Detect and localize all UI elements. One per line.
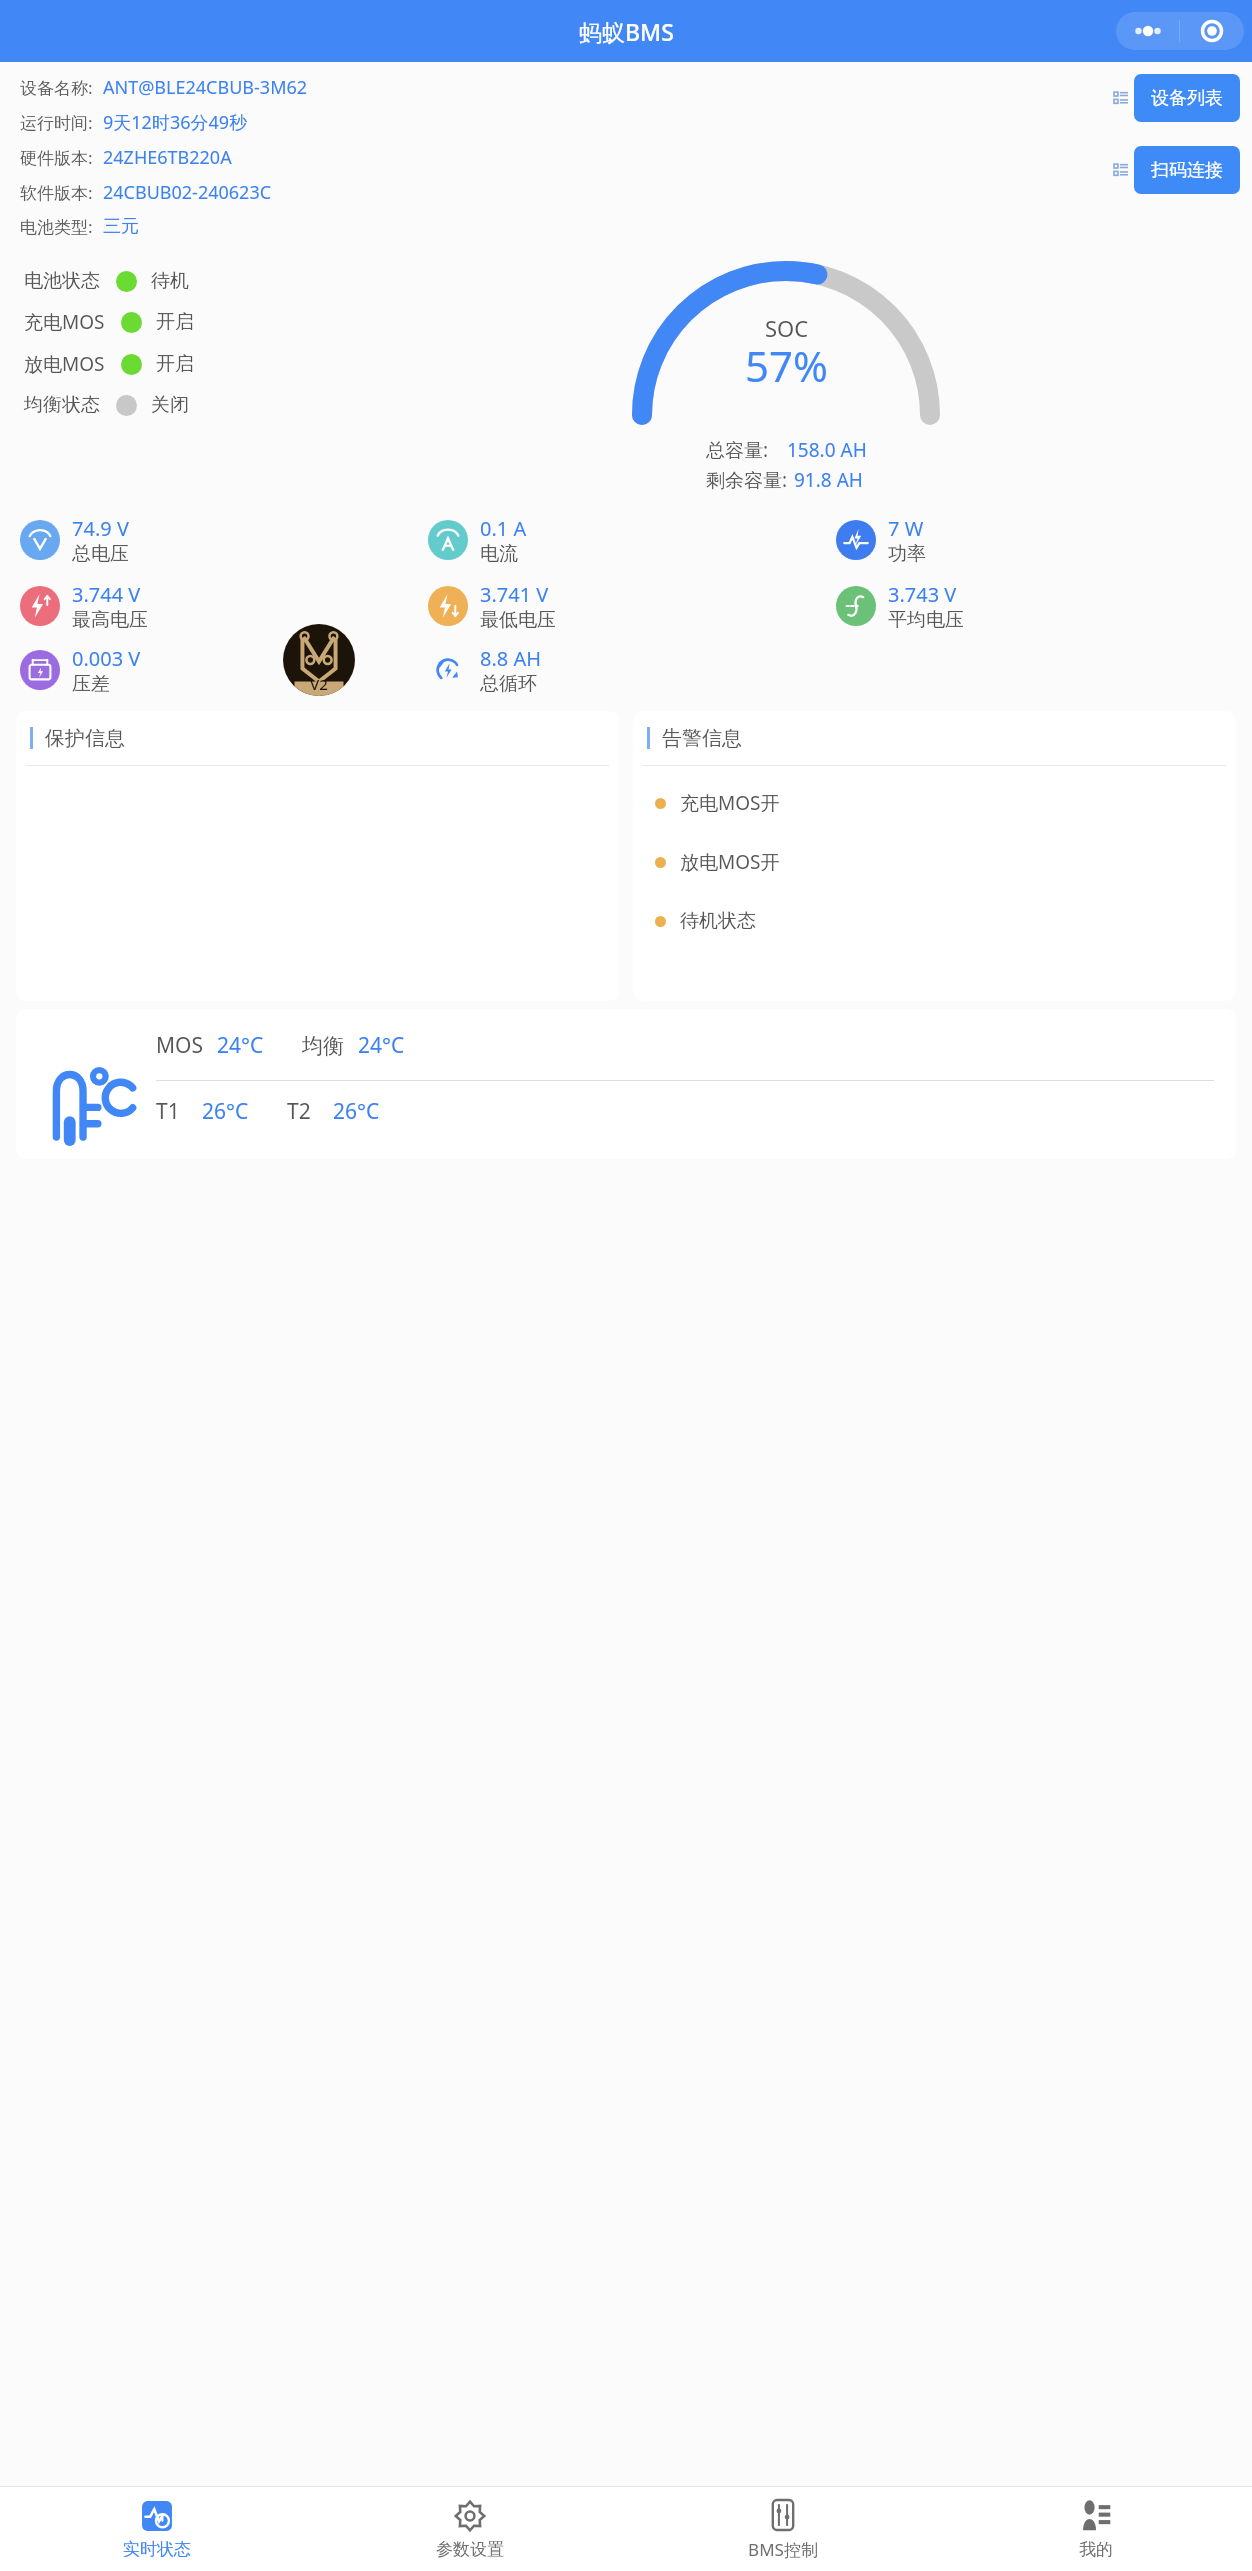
staticText: 3.741 V — [480, 581, 549, 608]
button[interactable]: 实时状态 — [0, 2487, 313, 2571]
staticText: 电池类型: — [20, 215, 93, 238]
staticText: 总容量: — [706, 437, 769, 463]
staticText: 0.1 A — [480, 515, 527, 542]
staticText: 7 W — [888, 515, 924, 542]
staticText: 26°C — [333, 1097, 380, 1126]
button[interactable]: App logo V2 — [283, 624, 355, 696]
staticText: 关闭 — [151, 393, 189, 417]
button[interactable]: 74.9 V — [14, 507, 422, 573]
staticText: 最高电压 — [72, 608, 148, 632]
staticText: 26°C — [202, 1097, 249, 1126]
staticText: 3.743 V — [888, 581, 957, 608]
button[interactable]: MOS — [16, 1009, 1236, 1159]
staticText: 24°C — [217, 1031, 264, 1060]
staticText: 158.0 AH — [787, 437, 867, 463]
staticText: MOS — [156, 1031, 203, 1060]
staticText: 硬件版本: — [20, 146, 93, 169]
staticText: 总电压 — [72, 542, 129, 566]
staticText: 功率 — [888, 542, 926, 566]
button[interactable]: BMS控制 — [626, 2487, 939, 2571]
button[interactable]: 扫码连接 — [1134, 146, 1240, 194]
staticText: BMS控制 — [748, 2538, 818, 2561]
staticText: 软件版本: — [20, 181, 93, 204]
staticText: 保护信息 — [45, 726, 125, 751]
staticText: 0.003 V — [72, 645, 141, 672]
staticText: 设备名称: — [20, 76, 93, 99]
button[interactable]: 3.741 V — [422, 573, 830, 639]
staticText: ANT@BLE24CBUB-3M62 — [103, 75, 308, 100]
staticText: 待机状态 — [680, 909, 756, 933]
staticText: 充电MOS开 — [680, 790, 780, 816]
staticText: 3.744 V — [72, 581, 141, 608]
button[interactable]: More — [1116, 12, 1179, 50]
staticText: 开启 — [156, 310, 194, 334]
staticText: 91.8 AH — [794, 467, 863, 493]
staticText: 告警信息 — [662, 726, 742, 751]
button[interactable]: 0.003 V — [14, 639, 422, 701]
button[interactable]: 7 W — [830, 507, 1238, 573]
staticText: 扫码连接 — [1151, 159, 1223, 182]
staticText: 放电MOS开 — [680, 849, 780, 875]
button[interactable]: 8.8 AH — [422, 639, 830, 701]
staticText: 参数设置 — [436, 2539, 504, 2560]
staticText: 平均电压 — [888, 608, 964, 632]
staticText: T2 — [287, 1097, 311, 1126]
button[interactable]: 告警信息 — [633, 711, 1236, 1001]
staticText: 电流 — [480, 542, 518, 566]
staticText: 9天12时36分49秒 — [103, 110, 248, 135]
staticText: 充电MOS — [24, 309, 105, 335]
button[interactable]: 3.744 V — [14, 573, 422, 639]
staticText: 设备列表 — [1151, 87, 1223, 110]
button[interactable]: 参数设置 — [313, 2487, 626, 2571]
staticText: 蚂蚁BMS — [579, 16, 674, 47]
button[interactable]: 3.743 V — [830, 573, 1238, 639]
staticText: 实时状态 — [123, 2539, 191, 2560]
button[interactable]: 我的 — [939, 2487, 1252, 2571]
staticText: 压差 — [72, 672, 110, 696]
staticText: 24ZHE6TB220A — [103, 145, 232, 170]
staticText: 剩余容量: — [706, 467, 788, 493]
staticText: T1 — [156, 1097, 180, 1126]
staticText: 三元 — [103, 215, 139, 238]
staticText: 24CBUB02-240623C — [103, 180, 272, 205]
staticText: 24°C — [358, 1031, 405, 1060]
staticText: 74.9 V — [72, 515, 129, 542]
staticText: SOC — [765, 313, 809, 343]
button[interactable]: Close — [1180, 12, 1244, 50]
staticText: 电池状态 — [24, 269, 100, 293]
staticText: 8.8 AH — [480, 645, 542, 672]
staticText: 我的 — [1079, 2539, 1113, 2560]
staticText: 开启 — [156, 352, 194, 376]
staticText: 最低电压 — [480, 608, 556, 632]
staticText: 57% — [745, 337, 828, 394]
staticText: 总循环 — [480, 672, 537, 696]
button[interactable]: 设备列表 — [1134, 74, 1240, 122]
staticText: 运行时间: — [20, 111, 93, 134]
staticText: 放电MOS — [24, 351, 105, 377]
button[interactable]: 0.1 A — [422, 507, 830, 573]
staticText: 均衡状态 — [24, 393, 100, 417]
button[interactable]: 保护信息 — [16, 711, 619, 1001]
staticText: 待机 — [151, 269, 189, 293]
staticText: 均衡 — [302, 1033, 344, 1059]
staticText: V2 — [310, 674, 328, 694]
